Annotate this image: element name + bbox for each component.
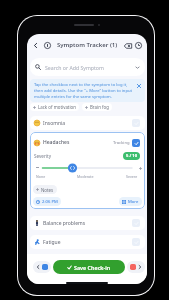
button[interactable]: Fatigue [30, 235, 145, 249]
button[interactable]: Increase severity [136, 164, 144, 172]
staticText: Symptom Tracker (1) [57, 41, 118, 49]
staticText: Save Check-in [74, 264, 111, 271]
button[interactable]: Track Fatigue [132, 238, 140, 246]
button[interactable]: Back [31, 41, 40, 50]
staticText: Tracking [113, 140, 130, 146]
staticText: Balance problems [43, 220, 86, 227]
staticText: Lack of motivation [38, 104, 76, 110]
button[interactable]: Track Insomnia [132, 119, 140, 127]
staticText: 2:06 PM [42, 199, 58, 205]
button[interactable]: More [119, 197, 142, 206]
staticText: Severe [126, 174, 138, 179]
staticText: Headaches [43, 139, 70, 146]
button[interactable]: Decrease severity [33, 163, 41, 171]
button[interactable]: Clear all [123, 41, 132, 50]
button[interactable]: Previous symptom [33, 261, 51, 273]
button[interactable]: Tracking checkbox [132, 139, 140, 147]
button[interactable]: Insomnia [30, 116, 145, 130]
button[interactable]: Save Check-in [53, 260, 125, 274]
staticText: Insomnia [43, 120, 66, 127]
button[interactable]: 2:06 PM [33, 197, 61, 206]
staticText: Brain fog [90, 104, 109, 110]
button[interactable]: History [134, 41, 143, 50]
staticText: Search or Add Symptom [45, 64, 104, 71]
staticText: More [128, 199, 139, 205]
button[interactable]: Brain fog [82, 103, 112, 111]
staticText: Tap the checkbox next to the symptom to … [34, 82, 133, 99]
staticText: Fatigue [43, 239, 61, 246]
button[interactable]: Dismiss tip [135, 82, 143, 90]
staticText: Severity [34, 153, 52, 159]
button[interactable]: Track Balance problems [132, 219, 140, 227]
staticText: Moderate [77, 174, 94, 179]
button[interactable]: Balance problems [30, 216, 145, 230]
staticText: Notes [41, 187, 54, 193]
staticText: 5 / 10 [126, 153, 138, 159]
button[interactable]: Search or Add Symptom [30, 58, 145, 76]
button[interactable]: Next symptom [127, 261, 145, 273]
staticText: None [36, 174, 46, 179]
button[interactable]: Notes [33, 185, 57, 194]
button[interactable]: Lack of motivation [30, 103, 79, 111]
button[interactable]: Information [43, 41, 52, 50]
